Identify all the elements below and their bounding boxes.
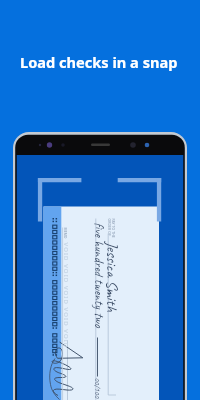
staticText: Load checks in a snap xyxy=(20,52,178,72)
